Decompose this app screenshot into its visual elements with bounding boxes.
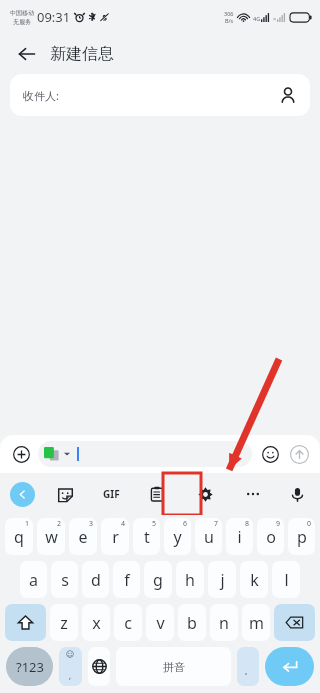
- staticText: b: [187, 612, 197, 634]
- button[interactable]: k: [240, 561, 268, 598]
- button[interactable]: Settings: [188, 477, 222, 511]
- staticText: l: [284, 569, 289, 591]
- button[interactable]: y: [164, 518, 191, 555]
- staticText: d: [91, 569, 101, 591]
- button[interactable]: f: [113, 561, 140, 598]
- staticText: t: [144, 526, 150, 548]
- button[interactable]: s: [51, 561, 78, 598]
- button[interactable]: Back: [14, 41, 40, 67]
- staticText: 7: [214, 519, 219, 529]
- staticText: x: [92, 612, 101, 634]
- button[interactable]: Clipboard: [144, 481, 170, 507]
- staticText: 9: [276, 519, 281, 529]
- staticText: 0: [307, 519, 312, 529]
- staticText: 4: [121, 519, 126, 529]
- staticText: B/s: [225, 17, 234, 24]
- staticText: 8: [245, 519, 250, 529]
- button[interactable]: ?123: [6, 647, 53, 686]
- button[interactable]: More options: [240, 481, 266, 507]
- button[interactable]: i: [226, 518, 253, 555]
- button[interactable]: GIF: [96, 479, 126, 509]
- staticText: m: [249, 612, 264, 634]
- button[interactable]: Backspace: [274, 604, 315, 641]
- button[interactable]: l: [272, 561, 300, 598]
- button[interactable]: Emoji and comma: [59, 647, 82, 686]
- button[interactable]: 收件人:: [10, 74, 310, 116]
- staticText: c: [124, 612, 132, 634]
- button[interactable]: v: [146, 604, 174, 641]
- staticText: 09:31: [37, 8, 71, 26]
- button[interactable]: h: [176, 561, 204, 598]
- staticText: p: [297, 526, 307, 548]
- staticText: y: [173, 526, 182, 548]
- staticText: a: [29, 569, 38, 591]
- button[interactable]: z: [50, 604, 78, 641]
- staticText: j: [220, 569, 225, 591]
- staticText: n: [219, 612, 229, 634]
- button[interactable]: u: [195, 518, 222, 555]
- staticText: 4G: [253, 15, 261, 22]
- button[interactable]: g: [144, 561, 172, 598]
- staticText: o: [266, 526, 276, 548]
- button[interactable]: Enter: [265, 647, 314, 686]
- staticText: ×: [273, 15, 277, 22]
- button[interactable]: 。: [237, 647, 259, 686]
- button[interactable]: Choose contact: [278, 85, 298, 105]
- staticText: 拼音: [163, 660, 185, 674]
- staticText: GIF: [103, 487, 120, 501]
- staticText: ☺: [66, 650, 75, 659]
- staticText: h: [185, 569, 195, 591]
- staticText: 。: [244, 665, 253, 676]
- button[interactable]: p: [288, 518, 315, 555]
- button[interactable]: Voice input: [284, 481, 310, 507]
- staticText: 新建信息: [50, 44, 114, 64]
- staticText: 收件人:: [23, 88, 59, 103]
- staticText: 中国移动: [10, 9, 34, 17]
- button[interactable]: w: [37, 518, 65, 555]
- staticText: w: [45, 526, 58, 548]
- button[interactable]: x: [82, 604, 110, 641]
- button[interactable]: Send: [286, 441, 312, 467]
- staticText: 3: [89, 519, 94, 529]
- staticText: e: [78, 526, 88, 548]
- button[interactable]: o: [257, 518, 284, 555]
- staticText: 6: [183, 519, 188, 529]
- staticText: i: [237, 526, 242, 548]
- staticText: u: [204, 526, 214, 548]
- staticText: f: [124, 569, 130, 591]
- button[interactable]: a: [20, 561, 47, 598]
- staticText: 2: [57, 519, 62, 529]
- button[interactable]: b: [178, 604, 206, 641]
- staticText: z: [60, 612, 68, 634]
- staticText: ,: [69, 670, 72, 681]
- button[interactable]: e: [69, 518, 97, 555]
- button[interactable]: j: [208, 561, 236, 598]
- button[interactable]: Stickers: [52, 481, 78, 507]
- staticText: 1: [25, 519, 30, 529]
- button[interactable]: Add attachment: [8, 441, 34, 467]
- staticText: k: [250, 569, 259, 591]
- button[interactable]: Collapse toolbar: [10, 482, 35, 507]
- button[interactable]: q: [5, 518, 33, 555]
- button[interactable]: c: [114, 604, 142, 641]
- staticText: s: [61, 569, 69, 591]
- staticText: 5: [152, 519, 157, 529]
- button[interactable]: 拼音: [116, 647, 231, 686]
- staticText: ?123: [16, 658, 44, 676]
- staticText: q: [14, 526, 24, 548]
- button[interactable]: r: [101, 518, 129, 555]
- staticText: g: [153, 569, 163, 591]
- staticText: 306: [224, 10, 234, 17]
- button[interactable]: Change language: [88, 647, 110, 686]
- button[interactable]: Emoji: [258, 442, 282, 466]
- staticText: 无服务: [13, 18, 31, 26]
- button[interactable]: d: [82, 561, 109, 598]
- button[interactable]: n: [210, 604, 238, 641]
- button[interactable]: Shift: [5, 604, 46, 641]
- button[interactable]: [38, 441, 252, 467]
- staticText: v: [156, 612, 165, 634]
- staticText: r: [112, 526, 119, 548]
- button[interactable]: t: [133, 518, 160, 555]
- button[interactable]: m: [242, 604, 270, 641]
